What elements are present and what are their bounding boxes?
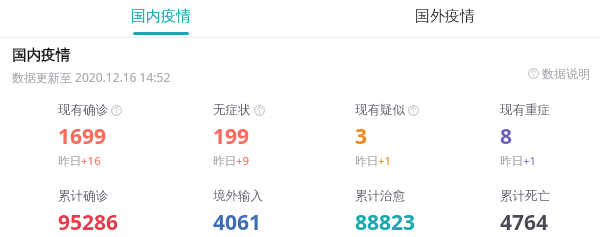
staticText: 数据说明 [542,66,590,81]
staticText: 昨日+1 [500,153,537,169]
staticText: 境外输入 [213,188,263,204]
button[interactable]: 累计死亡 [500,188,550,237]
staticText: 4061 [213,208,262,237]
button[interactable]: 国内疫情 [131,0,191,35]
button[interactable]: 累计确诊 [58,188,119,237]
button[interactable]: 现有疑似 [355,102,419,169]
button[interactable]: 无症状 [213,102,265,169]
staticText: 8 [500,122,513,151]
button[interactable]: 现有重症 [500,102,550,169]
staticText: 95286 [58,208,119,237]
other: 说明 [408,105,419,116]
button[interactable]: 累计治愈 [355,188,416,237]
other: 说明 [254,105,265,116]
button[interactable]: 数据说明 [528,66,590,81]
staticText: 88823 [355,208,416,237]
other: 说明 [111,105,122,116]
staticText: 199 [213,122,250,151]
staticText: 现有重症 [500,102,550,118]
staticText: 累计死亡 [500,188,550,204]
button[interactable]: 现有确诊 [58,102,122,169]
staticText: 昨日+16 [58,153,101,169]
button[interactable]: 国外疫情 [415,7,475,26]
staticText: 国外疫情 [415,7,475,26]
staticText: 3 [355,122,368,151]
staticText: 4764 [500,208,549,237]
staticText: 1699 [58,122,107,151]
button[interactable]: 境外输入 [213,188,263,237]
staticText: 国内疫情 [131,7,191,26]
staticText: 昨日+1 [355,153,392,169]
staticText: 累计治愈 [355,188,405,204]
staticText: 数据更新至 2020.12.16 14:52 [12,69,171,85]
staticText: 昨日+9 [213,153,250,169]
staticText: 现有疑似 [355,102,405,118]
staticText: 累计确诊 [58,188,108,204]
staticText: 国内疫情 [12,46,70,64]
staticText: 现有确诊 [58,102,108,118]
staticText: 无症状 [213,102,251,118]
